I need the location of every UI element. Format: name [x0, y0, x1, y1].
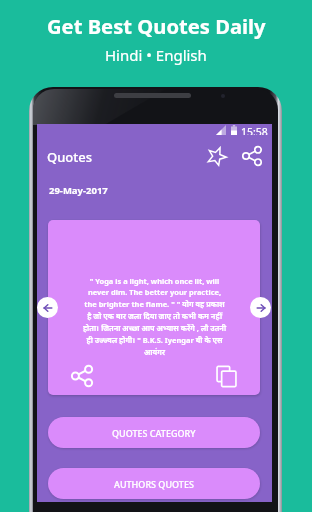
button[interactable]: Copy: [213, 363, 239, 389]
staticText: Hindi • English: [105, 45, 207, 65]
staticText: 15:58: [241, 125, 268, 135]
staticText: QUOTES CATEGORY: [112, 427, 196, 439]
button[interactable]: Previous quote: [37, 297, 58, 318]
button[interactable]: AUTHORS QUOTES: [48, 468, 260, 499]
staticText: 29-May-2017: [49, 184, 108, 197]
button[interactable]: QUOTES CATEGORY: [48, 417, 260, 448]
button[interactable]: Next quote: [250, 297, 271, 318]
button[interactable]: Quotes: [47, 148, 93, 166]
staticText: " Yoga is a light, which once lit, will …: [82, 276, 227, 357]
staticText: AUTHORS QUOTES: [114, 478, 194, 490]
button[interactable]: Favourite: [204, 144, 228, 168]
button[interactable]: Share: [240, 144, 264, 168]
staticText: Get Best Quotes Daily: [47, 12, 266, 40]
button[interactable]: Share quote: [69, 363, 95, 389]
